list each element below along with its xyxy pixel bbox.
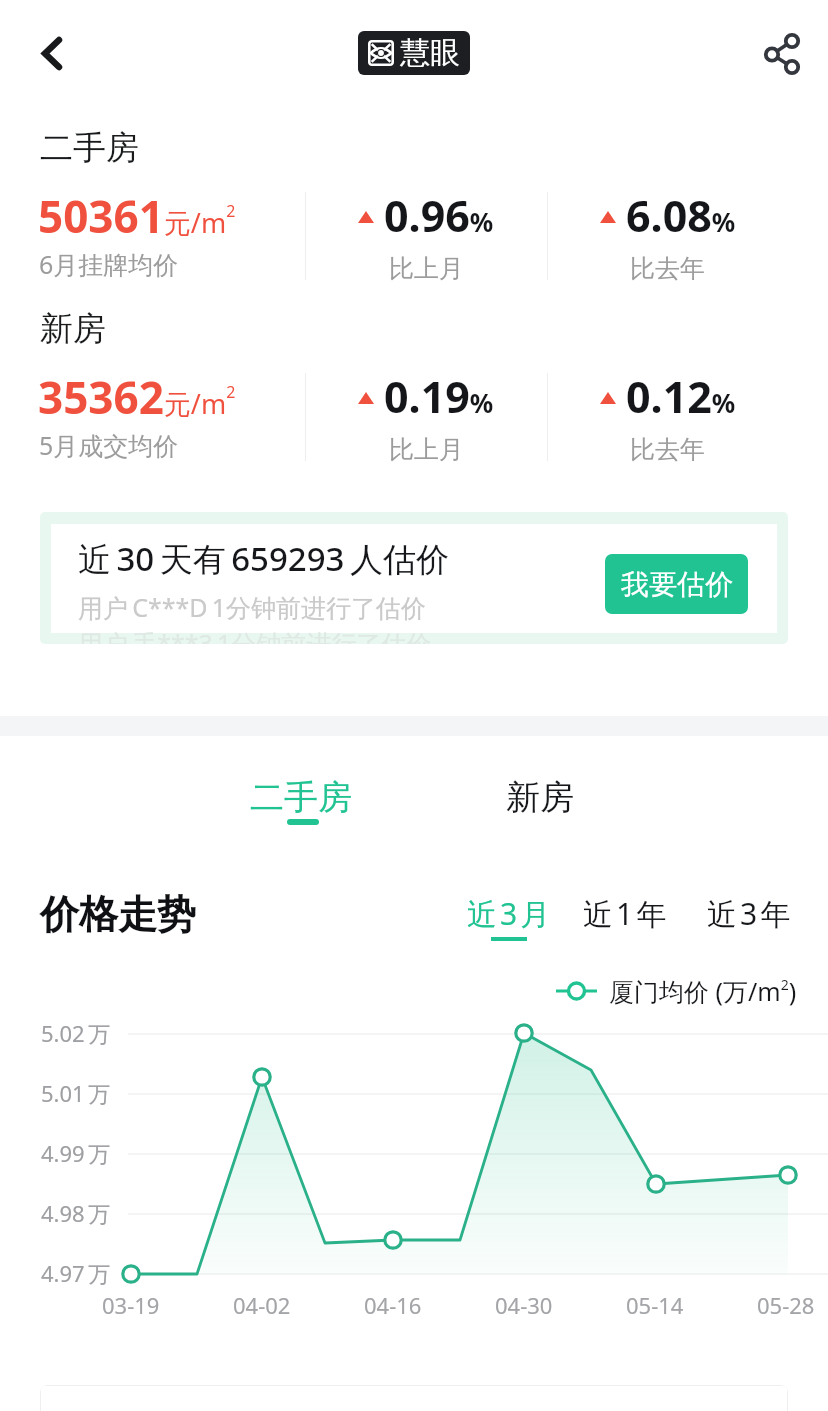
staticText: 厦门均价 (万/m2) [609, 974, 797, 1008]
staticText: 近 30 天有 659293 人估价 [78, 536, 449, 581]
button[interactable]: Back [20, 21, 84, 85]
staticText: 04-02 [233, 1290, 291, 1320]
button[interactable]: 近 1 年 [575, 893, 675, 941]
staticText: 0.96% [384, 186, 494, 245]
staticText: 04-30 [495, 1290, 553, 1320]
staticText: 二手房 [250, 776, 352, 819]
staticText: 近 3 年 [707, 893, 791, 934]
staticText: 04-16 [364, 1290, 422, 1320]
staticText: 5.01 万 [41, 1078, 111, 1108]
staticText: 比去年 [630, 434, 705, 465]
staticText: 50361元/m2 [38, 186, 236, 246]
staticText: 4.97 万 [41, 1258, 111, 1288]
staticText: 二手房 [40, 127, 139, 169]
button[interactable]: 50361元/m2 [38, 186, 236, 246]
staticText: 价格走势 [40, 890, 196, 939]
button[interactable]: 我要估价 [605, 554, 748, 614]
staticText: 5.02 万 [41, 1018, 111, 1048]
staticText: 比上月 [389, 253, 464, 284]
staticText: 比去年 [630, 253, 705, 284]
staticText: 我要估价 [621, 567, 733, 602]
staticText: 0.19% [384, 367, 494, 426]
button[interactable]: 0.19% [305, 367, 547, 477]
button[interactable]: 新房 [475, 776, 605, 838]
button[interactable]: 0.12% [547, 367, 788, 477]
button[interactable]: 近 30 天有 659293 人估价 [40, 512, 788, 644]
staticText: 用户 C***D 1分钟前进行了估价 [78, 590, 426, 624]
staticText: 4.99 万 [41, 1138, 111, 1168]
staticText: 近 1 年 [583, 893, 667, 934]
button[interactable]: 0.96% [305, 186, 547, 296]
button[interactable]: 近 3 年 [699, 893, 799, 941]
staticText: 6.08% [626, 186, 736, 245]
button[interactable]: Share [750, 21, 814, 85]
button[interactable]: 35362元/m2 [38, 367, 236, 427]
staticText: 05-28 [757, 1290, 815, 1320]
button[interactable] [40, 1385, 788, 1411]
staticText: 03-19 [102, 1290, 160, 1320]
staticText: 用户 手***3 1分钟前进行了估价 [78, 626, 432, 644]
staticText: 6月挂牌均价 [39, 247, 179, 281]
button[interactable]: 近 3 月 [459, 893, 559, 941]
staticText: 5月成交均价 [39, 428, 179, 462]
staticText: 慧眼 [400, 34, 460, 72]
staticText: 4.98 万 [41, 1198, 111, 1228]
button[interactable]: 慧眼 [358, 31, 470, 75]
staticText: 35362元/m2 [38, 367, 236, 427]
staticText: 比上月 [389, 434, 464, 465]
staticText: 05-14 [626, 1290, 684, 1320]
staticText: 新房 [506, 776, 574, 819]
button[interactable]: 二手房 [236, 770, 366, 832]
button[interactable]: 6.08% [547, 186, 788, 296]
staticText: 0.12% [626, 367, 736, 426]
staticText: 近 3 月 [467, 893, 551, 934]
staticText: 新房 [40, 308, 106, 350]
